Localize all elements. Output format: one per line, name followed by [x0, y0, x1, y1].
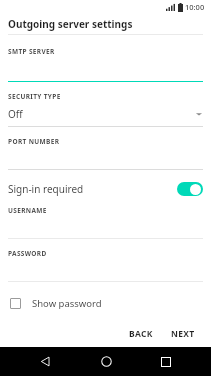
staticText: BACK	[129, 328, 153, 340]
staticText: Off	[8, 107, 195, 121]
button[interactable]: Sign-in required	[8, 179, 203, 199]
staticText: Outgoing server settings	[8, 17, 133, 31]
staticText: Show password	[32, 297, 102, 310]
staticText: PASSWORD	[8, 249, 47, 258]
button[interactable]	[8, 215, 203, 239]
button[interactable]	[8, 258, 203, 282]
button[interactable]: Back	[30, 347, 60, 376]
staticText: SECURITY TYPE	[8, 92, 61, 101]
staticText: USERNAME	[8, 206, 47, 215]
staticText: Sign-in required	[8, 182, 177, 196]
button[interactable]: Show password	[8, 295, 102, 312]
button[interactable]: Home	[91, 347, 121, 376]
button[interactable]: BACK	[123, 325, 159, 343]
staticText: 10:00	[185, 2, 205, 12]
staticText: NEXT	[171, 328, 195, 340]
staticText: SMTP SERVER	[8, 47, 55, 56]
button[interactable]: Recent apps	[151, 347, 181, 376]
button[interactable]: Off	[8, 107, 203, 121]
button[interactable]	[8, 146, 203, 170]
staticText: PORT NUMBER	[8, 137, 60, 146]
button[interactable]: Sign-in required toggle	[177, 182, 203, 196]
button[interactable]: NEXT	[165, 325, 201, 343]
button[interactable]	[8, 56, 203, 82]
